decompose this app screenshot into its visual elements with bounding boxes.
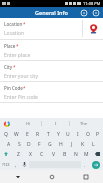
staticText: N [74,151,78,158]
button[interactable]: Recents [69,170,103,183]
button[interactable]: U [63,129,73,139]
button[interactable]: F [34,139,44,149]
staticText: Q [4,131,8,138]
staticText: T [47,131,50,138]
staticText: B [63,151,67,158]
button[interactable]: S [14,139,24,149]
button[interactable]: M [81,149,92,159]
staticText: H [59,141,63,148]
staticText: Enter Pin code [4,94,38,101]
staticText: Z [17,151,20,158]
button[interactable]: Back [0,170,35,183]
button[interactable]: I [42,118,69,129]
button[interactable]: O [83,129,93,139]
button[interactable]: The [70,118,97,129]
button[interactable]: Backspace [92,149,103,159]
staticText: . [84,162,86,168]
button[interactable]: Pin Code [4,85,103,102]
staticText: Hi [26,121,30,126]
staticText: ?123 [2,162,10,167]
button[interactable]: X [24,149,36,159]
staticText: C [40,151,44,158]
staticText: L [92,141,95,148]
button[interactable]: Location [4,21,82,37]
staticText: W [14,131,19,138]
staticText: J [71,141,73,148]
button[interactable]: ?123 [0,159,12,170]
staticText: Pin Code [4,85,23,91]
staticText: P [96,131,100,138]
button[interactable]: A [4,139,14,149]
staticText: , [15,162,17,168]
staticText: G [48,141,52,148]
staticText: V [52,151,56,158]
button[interactable]: H [55,139,66,149]
button[interactable]: B [59,149,70,159]
staticText: F [38,141,41,148]
staticText: I [77,131,79,138]
staticText: General Info [35,9,68,16]
staticText: D [27,141,31,148]
staticText: X [29,151,32,158]
staticText: K [81,141,85,148]
staticText: * [23,85,26,91]
button[interactable]: Enter [89,159,103,170]
button[interactable]: C [36,149,48,159]
button[interactable]: L [88,139,99,149]
staticText: Enter your city [4,73,38,80]
button[interactable]: Pick location on map [83,18,103,39]
button[interactable]: J [66,139,77,149]
button[interactable]: G [44,139,55,149]
staticText: * [16,43,19,49]
staticText: Location [4,30,25,37]
staticText: O [86,131,90,138]
staticText: Place [4,43,16,49]
button[interactable]: I [73,129,83,139]
button[interactable]: E [22,129,33,139]
staticText: 11:08 PM [83,1,101,6]
button[interactable]: Settings [92,9,100,17]
staticText: M [84,151,89,158]
button[interactable]: R [33,129,43,139]
button[interactable]: T [43,129,53,139]
staticText: City [4,64,13,70]
button[interactable]: D [24,139,34,149]
staticText: The [80,121,87,126]
button[interactable]: W [11,129,22,139]
staticText: I [55,121,57,126]
button[interactable]: Voice input [20,159,29,170]
staticText: S [18,141,21,148]
button[interactable]: K [77,139,88,149]
staticText: Location [4,21,23,27]
button[interactable]: Q [0,129,11,139]
button[interactable]: V [48,149,59,159]
staticText: R [36,131,40,138]
button[interactable]: Place [4,43,103,60]
button[interactable]: . [81,159,89,170]
button[interactable]: Shift [0,149,12,159]
button[interactable]: , [12,159,20,170]
button[interactable]: Help [80,9,88,17]
staticText: U [66,131,70,138]
button[interactable]: Home [35,170,69,183]
staticText: Enter place [4,52,31,59]
button[interactable]: Google [0,118,14,129]
staticText: * [23,21,26,27]
button[interactable]: Hi [14,118,41,129]
staticText: E [26,131,29,138]
button[interactable]: P [93,129,103,139]
staticText: * [13,64,16,70]
staticText: Y [57,131,60,138]
button[interactable]: Y [53,129,63,139]
staticText: A [7,141,11,148]
button[interactable]: N [70,149,81,159]
button[interactable]: City [4,64,103,81]
button[interactable]: Z [12,149,24,159]
